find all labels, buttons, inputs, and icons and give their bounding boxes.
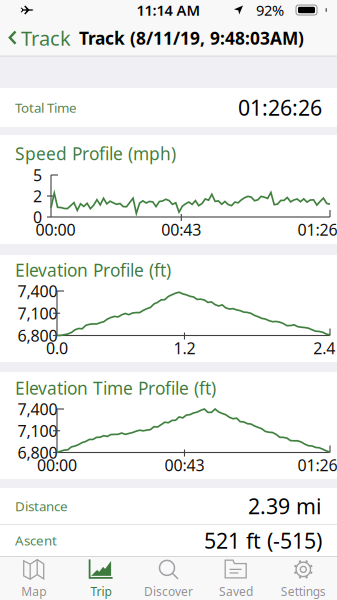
staticText: 2.4 <box>313 337 335 359</box>
staticText: Trip <box>91 583 112 599</box>
staticText: 11:14 AM <box>136 0 200 20</box>
staticText: 00:43 <box>164 454 204 476</box>
button[interactable]: Track <box>0 25 71 51</box>
button[interactable]: Discover <box>135 557 202 600</box>
staticText: 7,100 <box>17 420 57 441</box>
staticText: 92% <box>256 0 284 20</box>
staticText: 00:43 <box>161 219 201 240</box>
staticText: 0.0 <box>46 337 68 359</box>
staticText: 6,800 <box>17 325 57 346</box>
staticText: 00:00 <box>35 219 75 240</box>
staticText: Elevation Time Profile (ft) <box>15 376 216 399</box>
staticText: 01:26:26 <box>238 93 322 122</box>
staticText: Distance <box>15 497 68 515</box>
staticText: Map <box>21 583 46 599</box>
staticText: 0 <box>33 206 42 228</box>
staticText: Settings <box>281 583 326 599</box>
staticText: 2.39 mi <box>248 492 322 520</box>
staticText: 7,100 <box>17 303 57 324</box>
staticText: 7,400 <box>17 280 57 302</box>
staticText: Saved <box>219 583 253 599</box>
staticText: 00:00 <box>37 454 77 476</box>
staticText: 01:26 <box>297 219 337 240</box>
staticText: 1.2 <box>173 337 195 359</box>
staticText: Track <box>21 25 71 51</box>
staticText: 01:26 <box>297 454 337 476</box>
staticText: Total Time <box>15 99 77 116</box>
staticText: Discover <box>144 583 193 599</box>
button[interactable]: Settings <box>270 557 337 600</box>
staticText: Ascent <box>15 531 57 549</box>
staticText: Track (8/11/19, 9:48:03AM) <box>79 26 304 49</box>
staticText: 6,800 <box>17 442 57 463</box>
staticText: 521 ft (-515) <box>204 526 322 554</box>
staticText: 7,400 <box>17 398 57 420</box>
staticText: 5 <box>33 164 42 186</box>
button[interactable]: Map <box>0 557 67 600</box>
button[interactable]: Saved <box>202 557 270 600</box>
button[interactable]: Trip <box>67 557 135 600</box>
staticText: Speed Profile (mph) <box>15 142 176 165</box>
staticText: 2 <box>33 185 42 207</box>
staticText: Elevation Profile (ft) <box>15 258 171 281</box>
